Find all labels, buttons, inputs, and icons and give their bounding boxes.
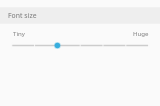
button[interactable]: Font size slider [0, 39, 160, 53]
staticText: Font size [8, 11, 37, 20]
staticText: Huge [133, 29, 149, 37]
staticText: Tiny [13, 29, 25, 37]
